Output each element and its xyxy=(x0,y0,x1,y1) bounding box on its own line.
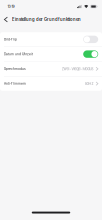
staticText: 13:19 xyxy=(8,4,15,9)
button[interactable]: Back xyxy=(0,15,12,24)
staticText: Datum und Uhrzeit xyxy=(4,52,33,56)
button[interactable]: Anti-Flimmern xyxy=(0,76,102,91)
staticText: Sprechmodus xyxy=(4,67,26,71)
staticText: Bild-Flip xyxy=(4,37,17,41)
staticText: Anti-Flimmern xyxy=(4,82,26,86)
staticText: Einstellung der Grundfunktionen xyxy=(12,17,81,22)
button[interactable]: Sprechmodus xyxy=(0,62,102,76)
button[interactable]: Bild-Flip xyxy=(0,32,102,46)
staticText: Zwei-Wege-Modus xyxy=(62,67,94,71)
staticText: 60Hz xyxy=(85,81,94,86)
button[interactable]: Datum und Uhrzeit xyxy=(0,47,102,61)
